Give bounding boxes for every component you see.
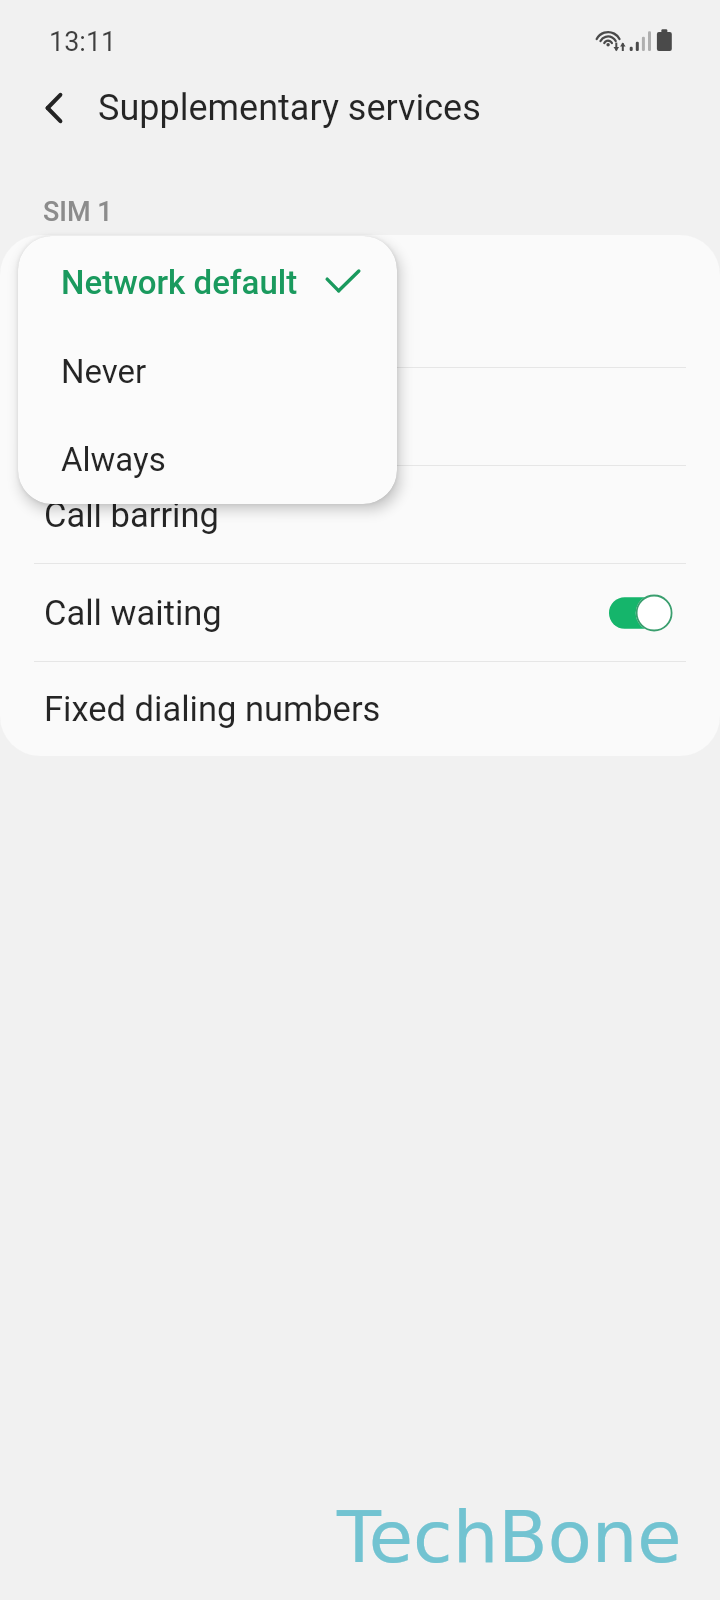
staticText: Network default [61,263,298,302]
button[interactable]: Call barring [0,466,720,563]
staticText: SIM 1 [43,196,113,228]
staticText: Always [61,440,166,479]
staticText: Call waiting [44,593,222,633]
button[interactable]: Call forwarding [0,270,720,367]
staticText: 13:11 [49,26,117,58]
button[interactable]: Fixed dialing numbers [0,662,720,756]
button[interactable]: Never [18,327,397,415]
button[interactable]: Network default [18,237,397,327]
button[interactable]: Always [18,415,397,503]
staticText: TechBone [337,1495,682,1579]
button[interactable]: Show my caller ID [0,368,720,465]
staticText: Call barring [44,495,219,535]
staticText: Fixed dialing numbers [44,689,381,729]
button[interactable]: Call waiting [0,564,720,661]
button[interactable]: Back [27,81,81,135]
staticText: Supplementary services [98,87,481,129]
button[interactable]: Call waiting toggle [609,592,673,634]
staticText: Never [61,352,147,391]
